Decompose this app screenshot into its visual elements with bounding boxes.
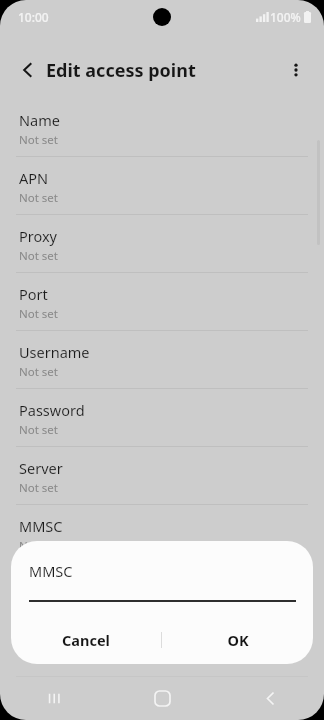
button[interactable]: Proxy [0,215,324,273]
staticText: MMSC [29,561,73,581]
staticText: Not set [19,364,58,380]
button[interactable]: Server [0,447,324,505]
staticText: MMSC [19,516,63,536]
staticText: 100% [270,9,301,25]
button[interactable]: More options [278,52,314,88]
staticText: Not set [19,480,58,496]
staticText: OK [227,630,249,650]
staticText: Edit access point [46,58,196,83]
staticText: Not set [19,422,58,438]
staticText: Port [19,284,48,304]
button[interactable]: Recent apps [0,676,108,720]
staticText: Not set [19,248,58,264]
staticText: Username [19,342,90,362]
staticText: Name [19,110,60,130]
staticText: Proxy [19,226,58,246]
staticText: Not set [19,538,58,554]
staticText: Not set [19,306,58,322]
button[interactable]: Back [10,52,46,88]
button[interactable]: Name [0,99,324,157]
button[interactable]: Password [0,389,324,447]
staticText: 10:00 [18,9,49,25]
button[interactable]: Home [108,676,216,720]
staticText: Cancel [62,630,110,650]
staticText: Password [19,400,85,420]
button[interactable]: Cancel [11,616,161,664]
button[interactable]: Back [216,676,324,720]
staticText: Server [19,458,63,478]
button[interactable]: APN [0,157,324,215]
button[interactable]: Username [0,331,324,389]
staticText: APN [19,168,49,188]
button[interactable]: OK [162,616,313,664]
staticText: Not set [19,190,58,206]
button[interactable]: MMSC [0,505,324,563]
staticText: Not set [19,132,58,148]
button[interactable]: Port [0,273,324,331]
